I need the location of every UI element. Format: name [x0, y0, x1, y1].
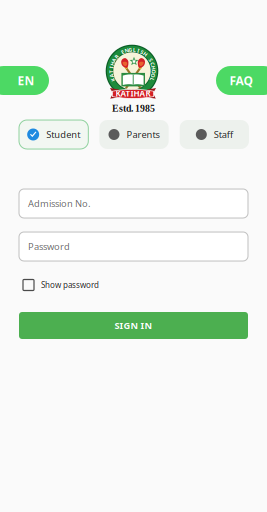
button[interactable]: Parents — [99, 120, 169, 149]
staticText: E — [121, 48, 124, 56]
staticText: C — [151, 60, 154, 67]
staticText: I — [137, 47, 139, 54]
staticText: A — [112, 56, 116, 64]
staticText: KATIHAR — [115, 88, 150, 99]
staticText: Estd. 1985 — [112, 103, 155, 114]
staticText: S — [140, 48, 143, 56]
staticText: S — [149, 56, 152, 64]
staticText — [148, 53, 149, 60]
button[interactable]: Student — [19, 120, 88, 149]
staticText: L — [133, 46, 136, 53]
staticText: L — [150, 76, 153, 83]
button[interactable]: FAQ — [216, 66, 267, 95]
button[interactable]: Staff — [180, 120, 249, 149]
staticText: R — [115, 53, 118, 60]
staticText: Parents — [126, 128, 159, 141]
staticText — [119, 51, 120, 58]
staticText: Show password — [41, 280, 99, 290]
button[interactable]: Show password — [23, 278, 143, 292]
staticText: Staff — [214, 128, 233, 141]
staticText: FAQ — [229, 72, 252, 88]
staticText: Admission No. — [28, 197, 91, 210]
staticText: Password — [28, 240, 70, 253]
staticText: N — [124, 47, 128, 54]
staticText: Student — [46, 128, 80, 141]
staticText: H — [151, 64, 155, 71]
staticText: O — [151, 72, 155, 79]
staticText: A — [110, 72, 114, 79]
button[interactable]: EN — [0, 66, 49, 95]
staticText: G — [128, 46, 132, 53]
button[interactable]: SIGN IN — [19, 312, 248, 339]
staticText: H — [110, 60, 114, 67]
staticText: SIGN IN — [114, 319, 152, 332]
staticText: I — [110, 64, 112, 71]
staticText: K — [111, 76, 115, 83]
staticText: EN — [17, 72, 34, 88]
staticText: O — [152, 68, 156, 75]
staticText: H — [143, 51, 147, 58]
staticText: T — [110, 68, 113, 75]
